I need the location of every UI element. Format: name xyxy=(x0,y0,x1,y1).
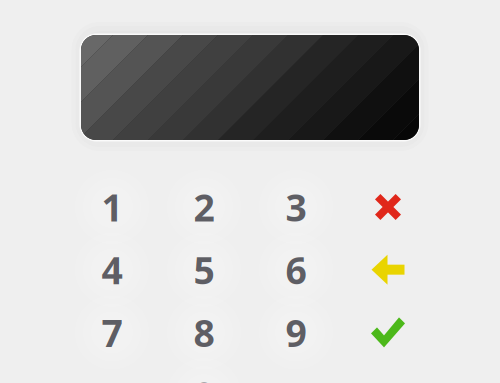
staticText: 8 xyxy=(193,308,214,357)
button[interactable]: 5 xyxy=(158,239,250,301)
button[interactable]: 6 xyxy=(250,239,342,301)
button[interactable]: 3 xyxy=(250,176,342,238)
button[interactable]: 7 xyxy=(66,301,158,363)
staticText: 6 xyxy=(285,245,306,294)
button[interactable]: 0 xyxy=(158,364,250,383)
button[interactable]: 9 xyxy=(250,301,342,363)
staticText: 9 xyxy=(285,308,306,357)
button[interactable]: 8 xyxy=(158,301,250,363)
button[interactable]: 2 xyxy=(158,176,250,238)
staticText: 0 xyxy=(193,370,214,383)
staticText: 5 xyxy=(193,245,214,294)
button[interactable]: Confirm xyxy=(342,301,434,363)
staticText: 4 xyxy=(101,245,122,294)
button[interactable]: Clear xyxy=(342,176,434,238)
staticText: 2 xyxy=(193,182,214,232)
button[interactable]: 1 xyxy=(66,176,158,238)
button[interactable]: 4 xyxy=(66,239,158,301)
staticText: 1 xyxy=(101,182,122,232)
staticText: 3 xyxy=(285,182,306,232)
staticText: 7 xyxy=(101,308,122,357)
button[interactable]: Backspace xyxy=(342,239,434,301)
